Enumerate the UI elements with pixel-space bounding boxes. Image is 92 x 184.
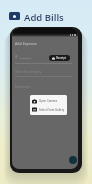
button[interactable]: Select From Gallery — [32, 107, 65, 112]
staticText: Select the Category — [15, 70, 42, 74]
staticText: Open Camera — [39, 99, 58, 103]
staticText: Add Bills — [24, 11, 64, 21]
button[interactable]: Add — [69, 156, 77, 164]
button[interactable]: Receipt — [52, 56, 67, 60]
staticText: Select From Gallery — [39, 108, 65, 112]
staticText: Description — [15, 85, 31, 89]
staticText: Add Expense — [15, 41, 37, 46]
staticText: Receipt — [56, 56, 67, 60]
button[interactable]: Open Camera — [32, 98, 65, 104]
staticText: ₹ — [15, 55, 18, 61]
button[interactable]: Add Bills — [9, 11, 64, 21]
